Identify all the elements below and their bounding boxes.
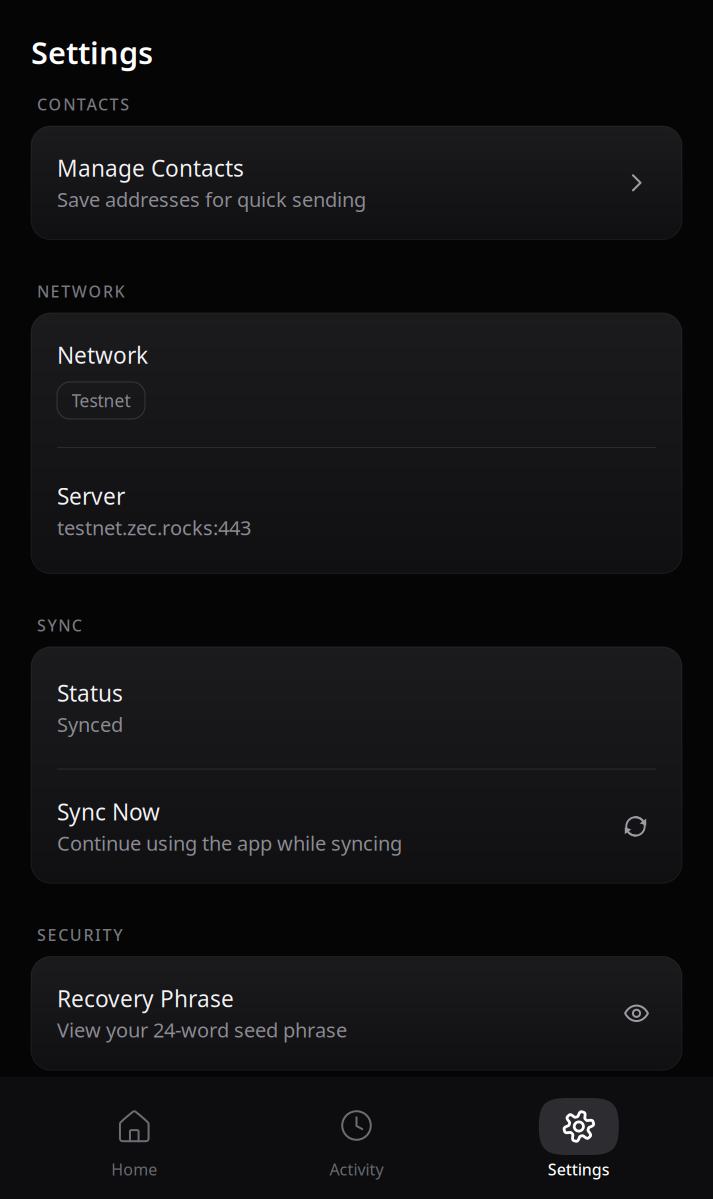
staticText: Save addresses for quick sending bbox=[57, 186, 366, 213]
staticText: Activity bbox=[329, 1159, 383, 1180]
button[interactable]: Recovery Phrase bbox=[31, 956, 682, 1070]
staticText: testnet.zec.rocks:443 bbox=[57, 514, 251, 541]
staticText: Continue using the app while syncing bbox=[57, 830, 402, 856]
staticText: SYNC bbox=[37, 615, 82, 636]
staticText: Network bbox=[57, 340, 148, 370]
staticText: Home bbox=[111, 1159, 157, 1180]
staticText: Testnet bbox=[71, 389, 130, 412]
button[interactable]: Activity bbox=[245, 1078, 468, 1199]
staticText: Server bbox=[57, 481, 125, 511]
staticText: Synced bbox=[57, 711, 123, 738]
staticText: Manage Contacts bbox=[57, 153, 244, 183]
staticText: NETWORK bbox=[37, 281, 125, 302]
staticText: SECURITY bbox=[37, 924, 122, 945]
button[interactable]: Testnet bbox=[57, 382, 145, 419]
staticText: Status bbox=[57, 678, 123, 708]
staticText: Settings bbox=[31, 32, 153, 73]
staticText: Sync Now bbox=[57, 797, 160, 827]
button[interactable]: Home bbox=[23, 1078, 245, 1199]
button[interactable]: Sync Now bbox=[31, 770, 682, 883]
staticText: Settings bbox=[548, 1159, 610, 1180]
button[interactable]: Settings bbox=[468, 1078, 690, 1199]
button[interactable]: Manage Contacts bbox=[31, 126, 682, 240]
staticText: CONTACTS bbox=[37, 94, 129, 115]
staticText: View your 24-word seed phrase bbox=[57, 1017, 347, 1043]
staticText: Recovery Phrase bbox=[57, 983, 234, 1014]
